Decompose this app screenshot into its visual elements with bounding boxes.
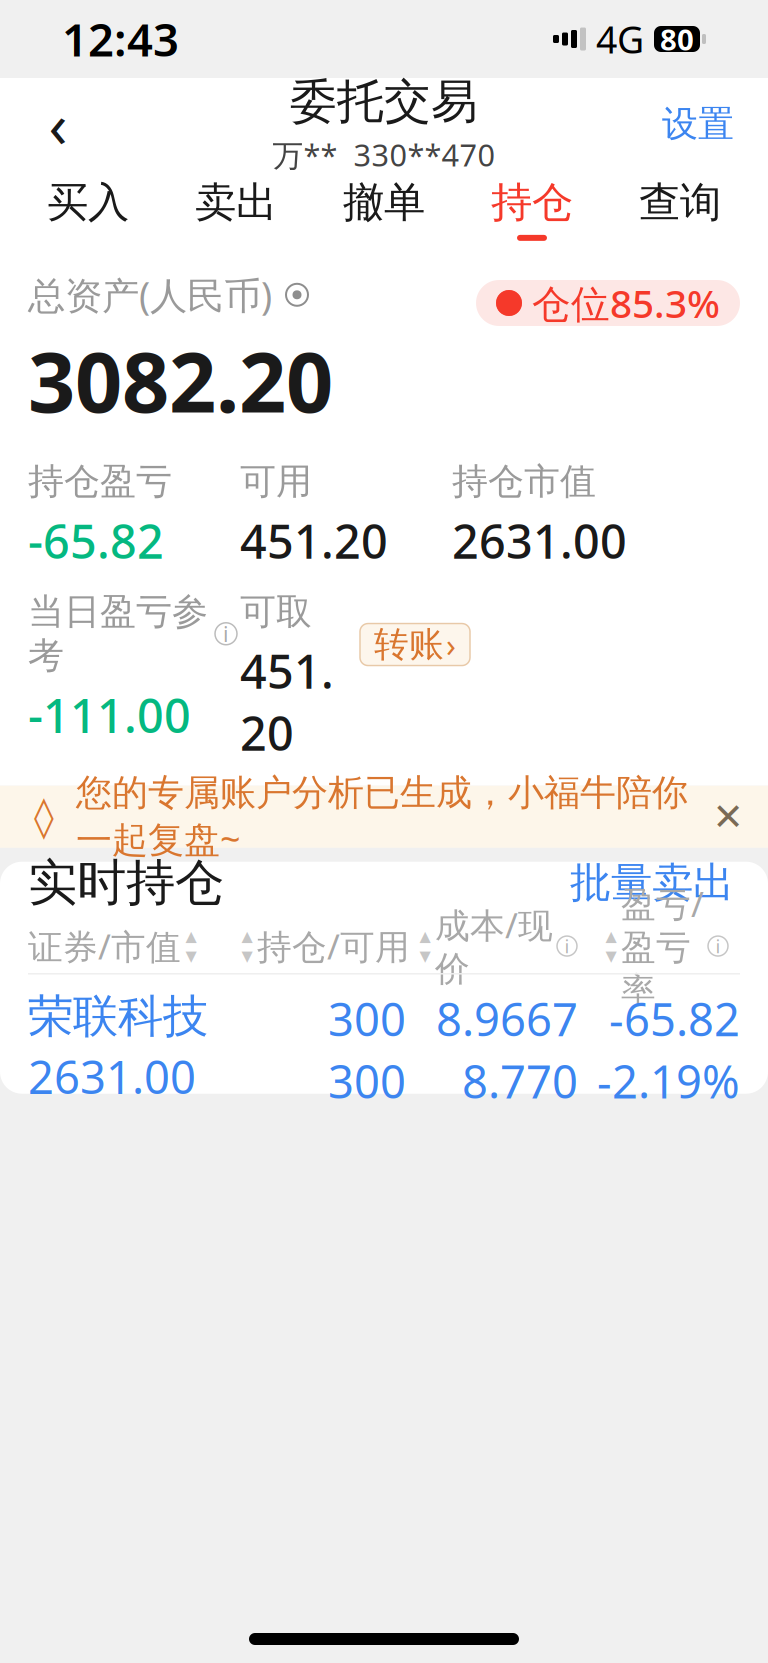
staticText: i: [564, 934, 569, 958]
staticText: 实时持仓: [28, 852, 224, 913]
staticText: -65.82: [609, 989, 740, 1049]
staticText: 持仓市值: [452, 459, 596, 504]
staticText: 撤单: [343, 177, 425, 228]
staticText: 荣联科技: [28, 989, 208, 1044]
staticText: i: [223, 620, 229, 648]
button[interactable]: 关闭提示: [700, 789, 756, 845]
staticText: 451.20: [240, 640, 334, 764]
staticText: 可取: [240, 589, 312, 634]
staticText: ▲: [605, 928, 616, 944]
staticText: 当日盈亏参考: [28, 589, 208, 678]
staticText: i: [715, 934, 720, 958]
staticText: 可用: [240, 459, 312, 504]
button[interactable]: 持仓: [458, 170, 606, 248]
staticText: 买入: [47, 177, 129, 228]
staticText: 查询: [639, 177, 721, 228]
staticText: -65.82: [28, 510, 164, 572]
staticText: ‹: [48, 83, 67, 165]
staticText: 持仓: [491, 177, 573, 228]
staticText: 2631.00: [452, 510, 627, 572]
button[interactable]: 荣联科技: [0, 975, 768, 1129]
staticText: 12:43: [62, 9, 179, 69]
staticText: 80: [660, 19, 694, 58]
staticText: 批量卖出: [570, 857, 734, 908]
button[interactable]: 设置: [644, 82, 752, 166]
staticText: ›: [446, 623, 456, 666]
button[interactable]: 查询: [606, 170, 754, 248]
staticText: 仓位85.3%: [532, 277, 720, 329]
staticText: 4G: [596, 14, 644, 64]
staticText: -2.19%: [597, 1051, 740, 1111]
staticText: ▲: [419, 928, 430, 944]
button[interactable]: 隐藏金额: [28, 270, 310, 320]
button[interactable]: 返回: [16, 82, 100, 166]
button[interactable]: 批量卖出: [564, 857, 740, 909]
staticText: 您的专属账户分析已生成，小福牛陪你一起复盘~: [76, 771, 688, 863]
staticText: ▲: [185, 928, 196, 944]
staticText: ▼: [241, 948, 252, 964]
staticText: ▼: [185, 948, 196, 964]
staticText: ▲: [241, 928, 252, 944]
staticText: 持仓/可用: [257, 923, 410, 969]
staticText: 持仓盈亏: [28, 459, 172, 504]
staticText: ▼: [605, 948, 616, 964]
staticText: 451.20: [240, 510, 388, 572]
staticText: 卖出: [195, 177, 277, 228]
staticText: 转账: [374, 623, 444, 666]
staticText: 3082.20: [28, 326, 333, 435]
staticText: -111.00: [28, 684, 191, 746]
staticText: ◊: [34, 794, 54, 839]
button[interactable]: 转账: [360, 623, 470, 665]
staticText: ✕: [712, 795, 743, 838]
staticText: 证券/市值: [28, 923, 181, 969]
staticText: 2631.00: [28, 1046, 196, 1106]
staticText: 盈亏/盈亏率: [621, 880, 704, 1012]
button[interactable]: 卖出: [162, 170, 310, 248]
staticText: 万** 330**470: [272, 134, 495, 175]
staticText: 8.770: [462, 1051, 578, 1111]
button[interactable]: 撤单: [310, 170, 458, 248]
staticText: 成本/现价: [435, 902, 553, 990]
staticText: 委托交易: [290, 73, 478, 130]
staticText: 300: [328, 1051, 406, 1111]
staticText: 8.9667: [436, 989, 578, 1049]
button[interactable]: 买入: [14, 170, 162, 248]
staticText: 总资产(人民币): [28, 270, 272, 320]
staticText: 设置: [662, 102, 734, 146]
staticText: ▼: [419, 948, 430, 964]
staticText: 300: [328, 989, 406, 1049]
